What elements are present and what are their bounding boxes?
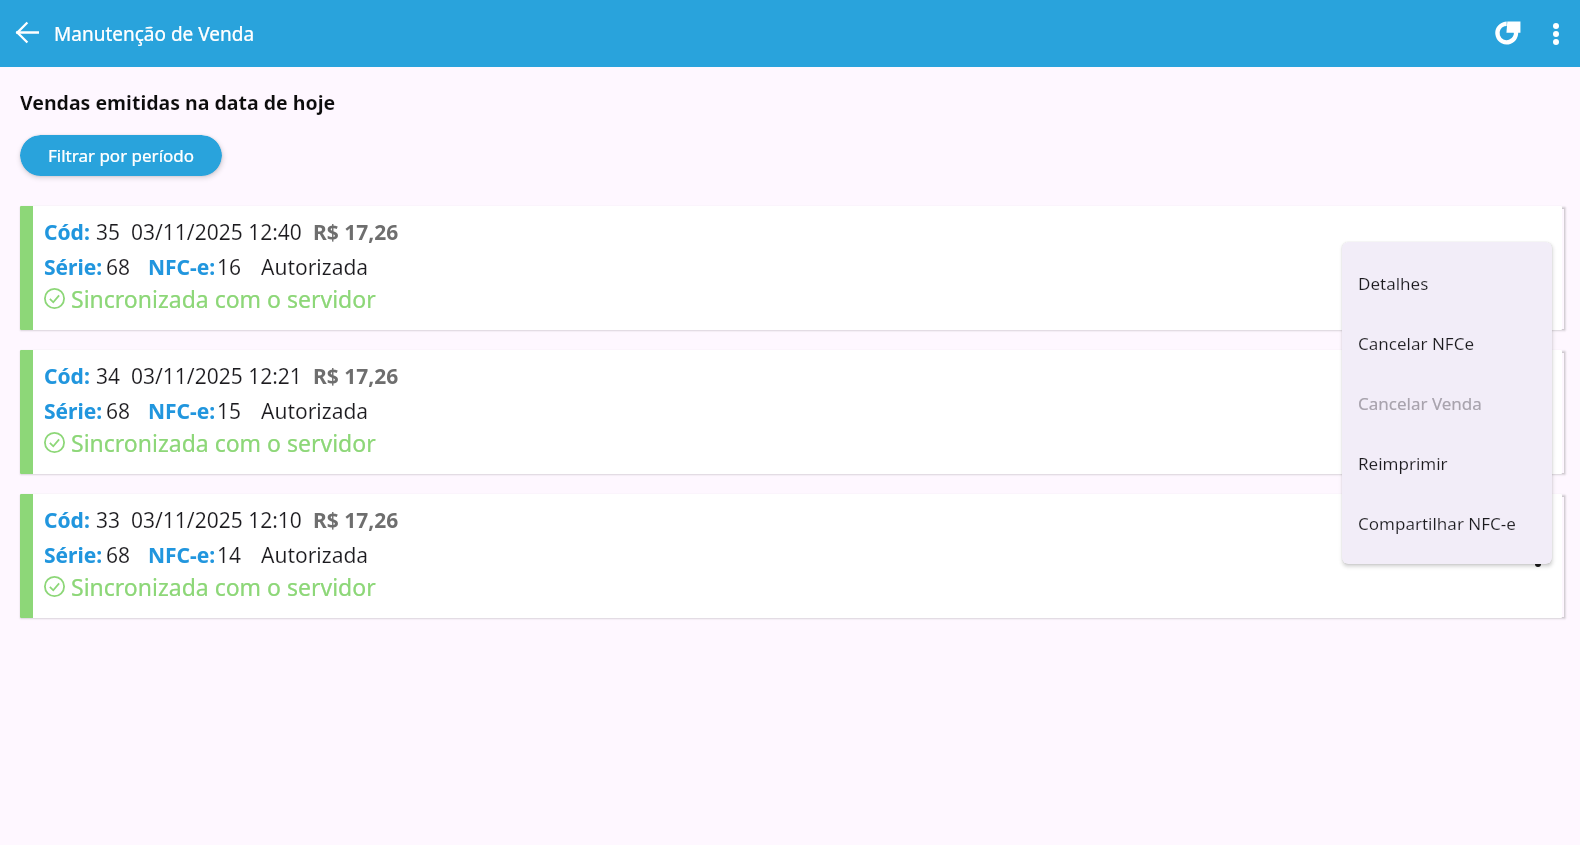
button[interactable]: Reimprimir — [1342, 433, 1552, 493]
staticText: R$ 17,26 — [313, 506, 399, 535]
staticText: Cancelar NFCe — [1358, 332, 1474, 355]
staticText: 16 — [217, 253, 242, 282]
button[interactable]: Cancelar Venda — [1342, 373, 1552, 433]
staticText: Série: — [44, 541, 103, 570]
staticText: 35 — [96, 218, 121, 247]
staticText: Cód: — [44, 506, 90, 535]
staticText: 68 — [106, 541, 131, 570]
button[interactable]: Detalhes — [1342, 253, 1552, 313]
staticText: Compartilhar NFC-e — [1358, 512, 1516, 535]
staticText: R$ 17,26 — [313, 362, 399, 391]
staticText: Sincronizada com o servidor — [71, 283, 376, 314]
staticText: Reimprimir — [1358, 452, 1448, 475]
staticText: NFC-e: — [148, 253, 216, 282]
button[interactable]: Cancelar NFCe — [1342, 313, 1552, 373]
staticText: Vendas emitidas na data de hoje — [20, 89, 336, 116]
staticText: NFC-e: — [148, 541, 216, 570]
staticText: NFC-e: — [148, 397, 216, 426]
staticText: 03/11/2025 12:21 — [131, 362, 302, 391]
staticText: 03/11/2025 12:40 — [131, 218, 302, 247]
staticText: Autorizada — [261, 253, 369, 282]
staticText: Autorizada — [261, 541, 369, 570]
button[interactable]: Cód: — [20, 350, 1562, 474]
staticText: 68 — [106, 397, 131, 426]
staticText: Cód: — [44, 362, 90, 391]
staticText: 15 — [217, 397, 242, 426]
button[interactable]: Compartilhar NFC-e — [1342, 493, 1552, 553]
staticText: Série: — [44, 253, 103, 282]
button[interactable]: Cód: — [20, 206, 1562, 330]
staticText: R$ 17,26 — [313, 218, 399, 247]
button[interactable]: Options — [1514, 350, 1562, 474]
staticText: 03/11/2025 12:10 — [131, 506, 302, 535]
staticText: Sincronizada com o servidor — [71, 427, 376, 458]
staticText: Cancelar Venda — [1358, 392, 1482, 415]
button[interactable]: Refresh — [1482, 10, 1530, 58]
staticText: Manutenção de Venda — [54, 21, 255, 47]
staticText: Detalhes — [1358, 272, 1429, 295]
staticText: Filtrar por período — [48, 144, 195, 167]
button[interactable]: More options — [1532, 10, 1580, 58]
staticText: Série: — [44, 397, 103, 426]
staticText: 14 — [217, 541, 242, 570]
staticText: Cód: — [44, 218, 90, 247]
button[interactable]: Back — [3, 10, 51, 58]
staticText: 68 — [106, 253, 131, 282]
button[interactable]: Options — [1514, 206, 1562, 330]
button[interactable]: Cód: — [20, 494, 1562, 618]
staticText: 33 — [96, 506, 121, 535]
staticText: Sincronizada com o servidor — [71, 571, 376, 602]
button[interactable]: Options — [1514, 494, 1562, 618]
staticText: Autorizada — [261, 397, 369, 426]
button[interactable]: Filtrar por período — [20, 135, 222, 176]
staticText: 34 — [96, 362, 121, 391]
